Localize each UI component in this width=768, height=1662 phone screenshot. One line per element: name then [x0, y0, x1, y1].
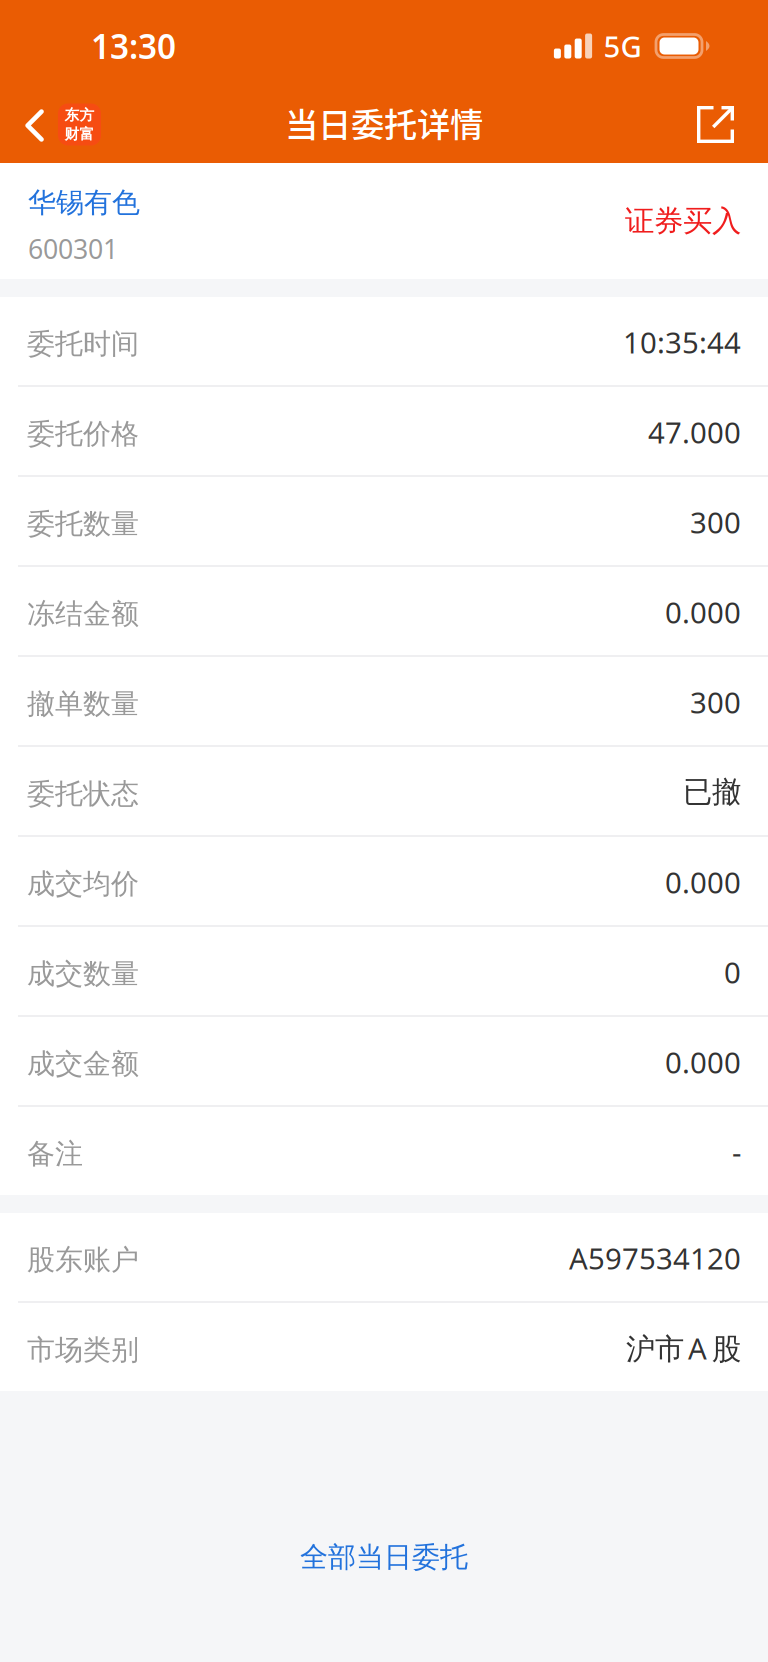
- staticText: 委托时间: [27, 327, 139, 361]
- staticText: 华锡有色: [28, 186, 140, 220]
- staticText: 0.000: [665, 862, 741, 901]
- button[interactable]: 返回: [0, 92, 115, 163]
- staticText: 沪市 A 股: [626, 1328, 741, 1367]
- staticText: 撤单数量: [27, 687, 139, 721]
- staticText: 成交均价: [27, 867, 139, 901]
- staticText: 已撤: [683, 774, 741, 810]
- staticText: 东方: [64, 106, 94, 124]
- staticText: 成交数量: [27, 957, 139, 991]
- staticText: 委托数量: [27, 507, 139, 541]
- staticText: 0.000: [665, 1042, 741, 1081]
- staticText: -: [732, 1132, 741, 1171]
- staticText: 600301: [28, 231, 118, 266]
- button[interactable]: 全部当日委托: [270, 1524, 498, 1590]
- staticText: A597534120: [569, 1238, 741, 1277]
- staticText: 备注: [27, 1137, 83, 1171]
- staticText: 13:30: [91, 24, 176, 68]
- staticText: 300: [690, 502, 741, 541]
- staticText: 当日委托详情: [285, 98, 483, 147]
- staticText: 300: [690, 682, 741, 721]
- staticText: 委托状态: [27, 777, 139, 811]
- staticText: 成交金额: [27, 1047, 139, 1081]
- staticText: 财富: [64, 125, 94, 143]
- staticText: 0.000: [665, 592, 741, 631]
- staticText: 0: [724, 952, 741, 991]
- staticText: 冻结金额: [27, 597, 139, 631]
- button[interactable]: 分享: [697, 92, 768, 163]
- staticText: 市场类别: [27, 1333, 139, 1367]
- staticText: 10:35:44: [623, 322, 741, 361]
- staticText: 委托价格: [27, 417, 139, 451]
- staticText: 47.000: [648, 412, 741, 451]
- staticText: 全部当日委托: [300, 1540, 468, 1574]
- staticText: 5G: [603, 26, 641, 65]
- staticText: 证券买入: [625, 203, 741, 239]
- staticText: 股东账户: [27, 1243, 139, 1277]
